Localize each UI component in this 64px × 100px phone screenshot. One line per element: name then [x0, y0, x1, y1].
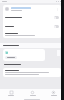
button[interactable]: More options: [3, 5, 61, 13]
button[interactable]: [3, 49, 45, 61]
button[interactable]: More options: [55, 7, 59, 11]
button[interactable]: [3, 68, 61, 77]
button[interactable]: Home: [0, 89, 22, 98]
button[interactable]: [3, 13, 61, 22]
button[interactable]: [5, 56, 17, 59]
button[interactable]: Library: [22, 89, 43, 98]
button[interactable]: [3, 22, 61, 31]
button[interactable]: [3, 31, 61, 38]
button[interactable]: Settings: [43, 89, 64, 98]
